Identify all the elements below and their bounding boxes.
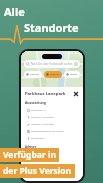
staticText: Alle Euroschlüssel — [4, 4, 99, 19]
staticText: Standorte — [24, 20, 79, 35]
button[interactable]: Höhenverstellung: Vorhanden — [25, 128, 75, 135]
button[interactable]: Schließen — [73, 91, 79, 97]
staticText: der Plus Version — [3, 165, 72, 177]
button[interactable]: Barrierefrei: -/- — [25, 135, 75, 142]
staticText: Details — [25, 158, 35, 162]
staticText: Adresse — [25, 145, 37, 149]
staticText: Preis — [25, 151, 32, 155]
staticText: Nach Ort oder Postleitzahl suchen — [31, 62, 73, 66]
staticText: Parkhaus Lanepark — [25, 91, 66, 97]
button[interactable]: Nach Ort oder Postleitzahl suchen — [24, 60, 80, 68]
button[interactable]: Rollstuhl — [44, 71, 62, 78]
staticText: Geschlecht: -/- — [31, 109, 47, 112]
staticText: Ausstattung — [25, 100, 46, 105]
staticText: Umkreis — [30, 73, 40, 76]
button[interactable]: Geschlecht: -/- — [25, 107, 75, 114]
button[interactable]: Rollstuhl: Vorhanden — [25, 114, 75, 121]
staticText: Rollstuhl — [50, 73, 60, 76]
staticText: Handlauf: Vorhanden — [31, 123, 55, 126]
staticText: Barrierefrei: -/- — [31, 137, 47, 140]
button[interactable]: Wickel — [64, 71, 80, 78]
staticText: Verfügbar in — [3, 149, 56, 161]
staticText: Höhenverstellung: Vorhanden — [31, 130, 64, 133]
button[interactable]: Verfügbar in — [0, 148, 75, 178]
staticText: Wickel — [70, 73, 78, 76]
staticText: Rollstuhl: Vorhanden — [31, 116, 54, 119]
button[interactable]: Umkreis — [24, 71, 42, 78]
button[interactable]: Handlauf: Vorhanden — [25, 121, 75, 128]
